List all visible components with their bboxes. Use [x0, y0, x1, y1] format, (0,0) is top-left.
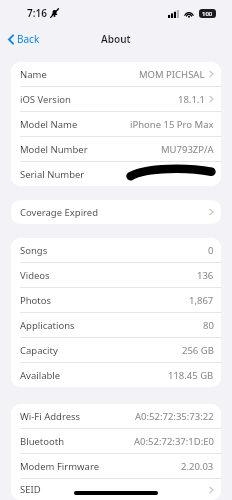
staticText: iPhone 15 Pro Max: [130, 118, 214, 131]
button[interactable]: Modem Firmware: [11, 454, 221, 479]
staticText: Back: [17, 32, 40, 46]
button[interactable]: Model Number: [11, 137, 221, 162]
staticText: Model Number: [20, 143, 88, 156]
button[interactable]: Model Name: [11, 112, 221, 137]
other: Redacted serial number: [127, 166, 215, 183]
staticText: Applications: [20, 319, 75, 332]
other: Cellular signal: [168, 10, 179, 18]
staticText: SEID: [20, 483, 41, 496]
button[interactable]: Capacity: [11, 338, 221, 363]
button[interactable]: iOS Version: [11, 87, 221, 112]
staticText: About: [101, 32, 131, 46]
staticText: 100: [202, 10, 213, 18]
staticText: 118.45 GB: [168, 369, 214, 382]
staticText: Photos: [20, 294, 52, 307]
button[interactable]: Songs: [11, 238, 221, 263]
button[interactable]: Videos: [11, 263, 221, 288]
staticText: Videos: [20, 269, 50, 282]
staticText: Model Name: [20, 118, 78, 131]
button[interactable]: Coverage Expired: [11, 200, 221, 224]
staticText: Wi-Fi Address: [20, 410, 81, 423]
staticText: iOS Version: [20, 93, 71, 106]
button[interactable]: Applications: [11, 313, 221, 338]
staticText: Capacity: [20, 344, 58, 357]
staticText: 80: [203, 319, 214, 332]
staticText: Songs: [20, 244, 48, 257]
button[interactable]: Bluetooth: [11, 429, 221, 454]
staticText: 256 GB: [182, 344, 214, 357]
staticText: MOM PICHSAL: [139, 68, 205, 81]
button[interactable]: SEID: [11, 479, 221, 500]
staticText: Coverage Expired: [20, 206, 99, 219]
staticText: 2.20.03: [181, 460, 214, 473]
staticText: Name: [20, 68, 47, 81]
button[interactable]: Back: [6, 29, 42, 49]
staticText: Bluetooth: [20, 435, 65, 448]
staticText: 1,867: [189, 294, 214, 307]
staticText: Modem Firmware: [20, 460, 99, 473]
button[interactable]: Available: [11, 363, 221, 387]
button[interactable]: Photos: [11, 288, 221, 313]
staticText: MU793ZP/A: [161, 143, 214, 156]
staticText: 0: [208, 244, 214, 257]
button[interactable]: Name: [11, 62, 221, 87]
other: Silent mode: [50, 8, 59, 18]
staticText: Serial Number: [20, 168, 85, 181]
staticText: A0:52:72:37:1D:E0: [134, 435, 214, 448]
staticText: A0:52:72:35:73:22: [135, 410, 214, 423]
staticText: 18.1.1: [178, 93, 205, 106]
other: Battery 100 percent: [199, 9, 216, 18]
staticText: 7:16: [27, 6, 47, 20]
staticText: 136: [197, 269, 214, 282]
other: Wi-Fi: [184, 10, 194, 18]
button[interactable]: Serial Number: [11, 162, 221, 186]
staticText: Available: [20, 369, 61, 382]
button[interactable]: Wi-Fi Address: [11, 404, 221, 429]
